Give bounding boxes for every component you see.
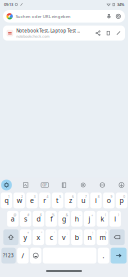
staticText: p [120, 196, 124, 205]
button[interactable]: GIF [39, 179, 51, 191]
button[interactable]: a [7, 211, 18, 227]
staticText: c [50, 232, 53, 242]
staticText: ( [105, 213, 106, 217]
staticText: i [95, 196, 97, 205]
button[interactable]: s [20, 211, 31, 227]
button[interactable]: Go [111, 248, 127, 263]
staticText: l [114, 214, 116, 223]
staticText: 2 [21, 194, 23, 199]
button[interactable]: Suchen oder URL eingeben [3, 10, 125, 23]
button[interactable]: t [52, 192, 63, 208]
staticText: h [75, 214, 79, 223]
button[interactable]: d [33, 211, 44, 227]
staticText: z [69, 196, 72, 205]
staticText: # [27, 213, 29, 217]
button[interactable]: i [90, 192, 102, 208]
button[interactable]: y [20, 229, 31, 245]
staticText: x [36, 232, 40, 242]
staticText: e [30, 196, 34, 205]
button[interactable]: l [109, 211, 121, 227]
staticText: g [62, 214, 66, 223]
button[interactable]: Voice input [115, 179, 127, 191]
button[interactable]: c [45, 229, 57, 245]
staticText: / [21, 251, 24, 260]
staticText: 6 [72, 194, 74, 199]
staticText: u [81, 196, 85, 205]
button[interactable]: k [97, 211, 108, 227]
staticText: 34% [117, 2, 124, 7]
button[interactable]: j [84, 211, 95, 227]
staticText: r [43, 196, 46, 205]
button[interactable]: Translate [96, 179, 108, 191]
button[interactable]: Notebook Test, Laptop Test ... [3, 26, 125, 41]
staticText: : [67, 231, 68, 236]
staticText: * [27, 231, 29, 236]
staticText: m [99, 232, 105, 242]
staticText: & [66, 213, 68, 217]
staticText: notebookcheck.com [16, 34, 49, 39]
staticText: a [11, 214, 15, 223]
staticText: ? [105, 231, 106, 236]
button[interactable]: Settings [77, 179, 89, 191]
button[interactable]: Clipboard [58, 179, 70, 191]
staticText: y [24, 232, 28, 242]
staticText: w [17, 196, 22, 205]
staticText: . [102, 251, 104, 260]
staticText: o [107, 196, 111, 205]
button[interactable]: z [65, 192, 76, 208]
staticText: 0 [123, 194, 125, 199]
staticText: ! [92, 231, 93, 236]
staticText: v [62, 232, 66, 242]
staticText: 5 [59, 194, 61, 199]
staticText: % [52, 213, 55, 217]
button[interactable]: . [98, 248, 109, 263]
staticText: j [89, 214, 91, 223]
staticText: b [75, 232, 79, 242]
staticText: f [50, 214, 52, 223]
button[interactable]: o [103, 192, 114, 208]
staticText: ' [54, 231, 55, 236]
staticText: d [36, 214, 40, 223]
button[interactable]: Backspace [109, 229, 125, 245]
button[interactable]: Emoji [30, 248, 41, 263]
button[interactable]: r [39, 192, 50, 208]
button[interactable]: x [33, 229, 44, 245]
button[interactable]: p [116, 192, 127, 208]
staticText: t [56, 196, 59, 205]
staticText: 9 [110, 194, 112, 199]
button[interactable]: g [58, 211, 70, 227]
staticText: 8 [98, 194, 100, 199]
button[interactable]: h [71, 211, 82, 227]
staticText: 7 [85, 194, 87, 199]
button[interactable]: m [97, 229, 108, 245]
staticText: ) [118, 213, 119, 217]
button[interactable]: n [84, 229, 95, 245]
staticText: s [24, 214, 27, 223]
staticText: Suchen oder URL eingeben [16, 13, 71, 19]
button[interactable]: e [26, 192, 38, 208]
button[interactable]: ?123 [1, 248, 16, 263]
staticText: + [91, 213, 93, 217]
staticText: ?123 [3, 252, 14, 259]
staticText: @ [13, 213, 16, 217]
staticText: k [100, 214, 104, 223]
staticText: 1 [8, 194, 10, 199]
button[interactable]: b [71, 229, 82, 245]
button[interactable]: / [17, 248, 29, 263]
button[interactable]: Stickers [20, 179, 32, 191]
button[interactable]: q [1, 192, 12, 208]
staticText: 3 [34, 194, 36, 199]
staticText: 4 [46, 194, 48, 199]
staticText: GIF [42, 183, 47, 187]
button[interactable]: u [77, 192, 89, 208]
button[interactable]: f [45, 211, 57, 227]
staticText: 09:13 [4, 2, 13, 7]
button[interactable]: Apps [0, 179, 12, 191]
staticText: q [4, 196, 8, 205]
button[interactable]: w [13, 192, 25, 208]
staticText: n [88, 232, 92, 242]
button[interactable]: v [58, 229, 70, 245]
button[interactable]: Shift [3, 229, 18, 245]
staticText: " [41, 231, 42, 236]
